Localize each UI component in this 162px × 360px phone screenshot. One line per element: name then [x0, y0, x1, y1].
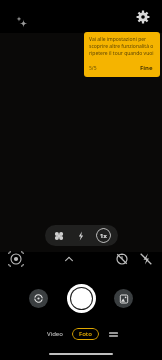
button[interactable]: Video: [42, 328, 68, 340]
button[interactable]: AI scene: [14, 14, 30, 30]
staticText: 5/5: [89, 65, 97, 72]
button[interactable]: Foto: [72, 328, 99, 340]
button[interactable]: Flash off: [136, 249, 156, 269]
button[interactable]: More options: [59, 249, 79, 269]
button[interactable]: Gallery: [114, 289, 133, 308]
button[interactable]: More modes: [106, 327, 120, 341]
staticText: 1x: [100, 232, 107, 240]
button[interactable]: Timer: [112, 249, 132, 269]
button[interactable]: Settings: [132, 6, 154, 28]
button[interactable]: 1x: [96, 228, 111, 243]
staticText: Vai alle impostazioni per scoprire altre…: [89, 36, 155, 57]
button[interactable]: Switch camera: [29, 289, 48, 308]
button[interactable]: Scene detection: [6, 249, 26, 269]
button[interactable]: Flash: [74, 229, 87, 242]
button[interactable]: Macro: [52, 229, 65, 242]
staticText: Fine: [140, 64, 153, 72]
staticText: Foto: [79, 330, 92, 338]
staticText: Video: [47, 330, 63, 338]
button[interactable]: Fine: [138, 63, 155, 73]
button[interactable]: Shutter: [67, 284, 96, 313]
